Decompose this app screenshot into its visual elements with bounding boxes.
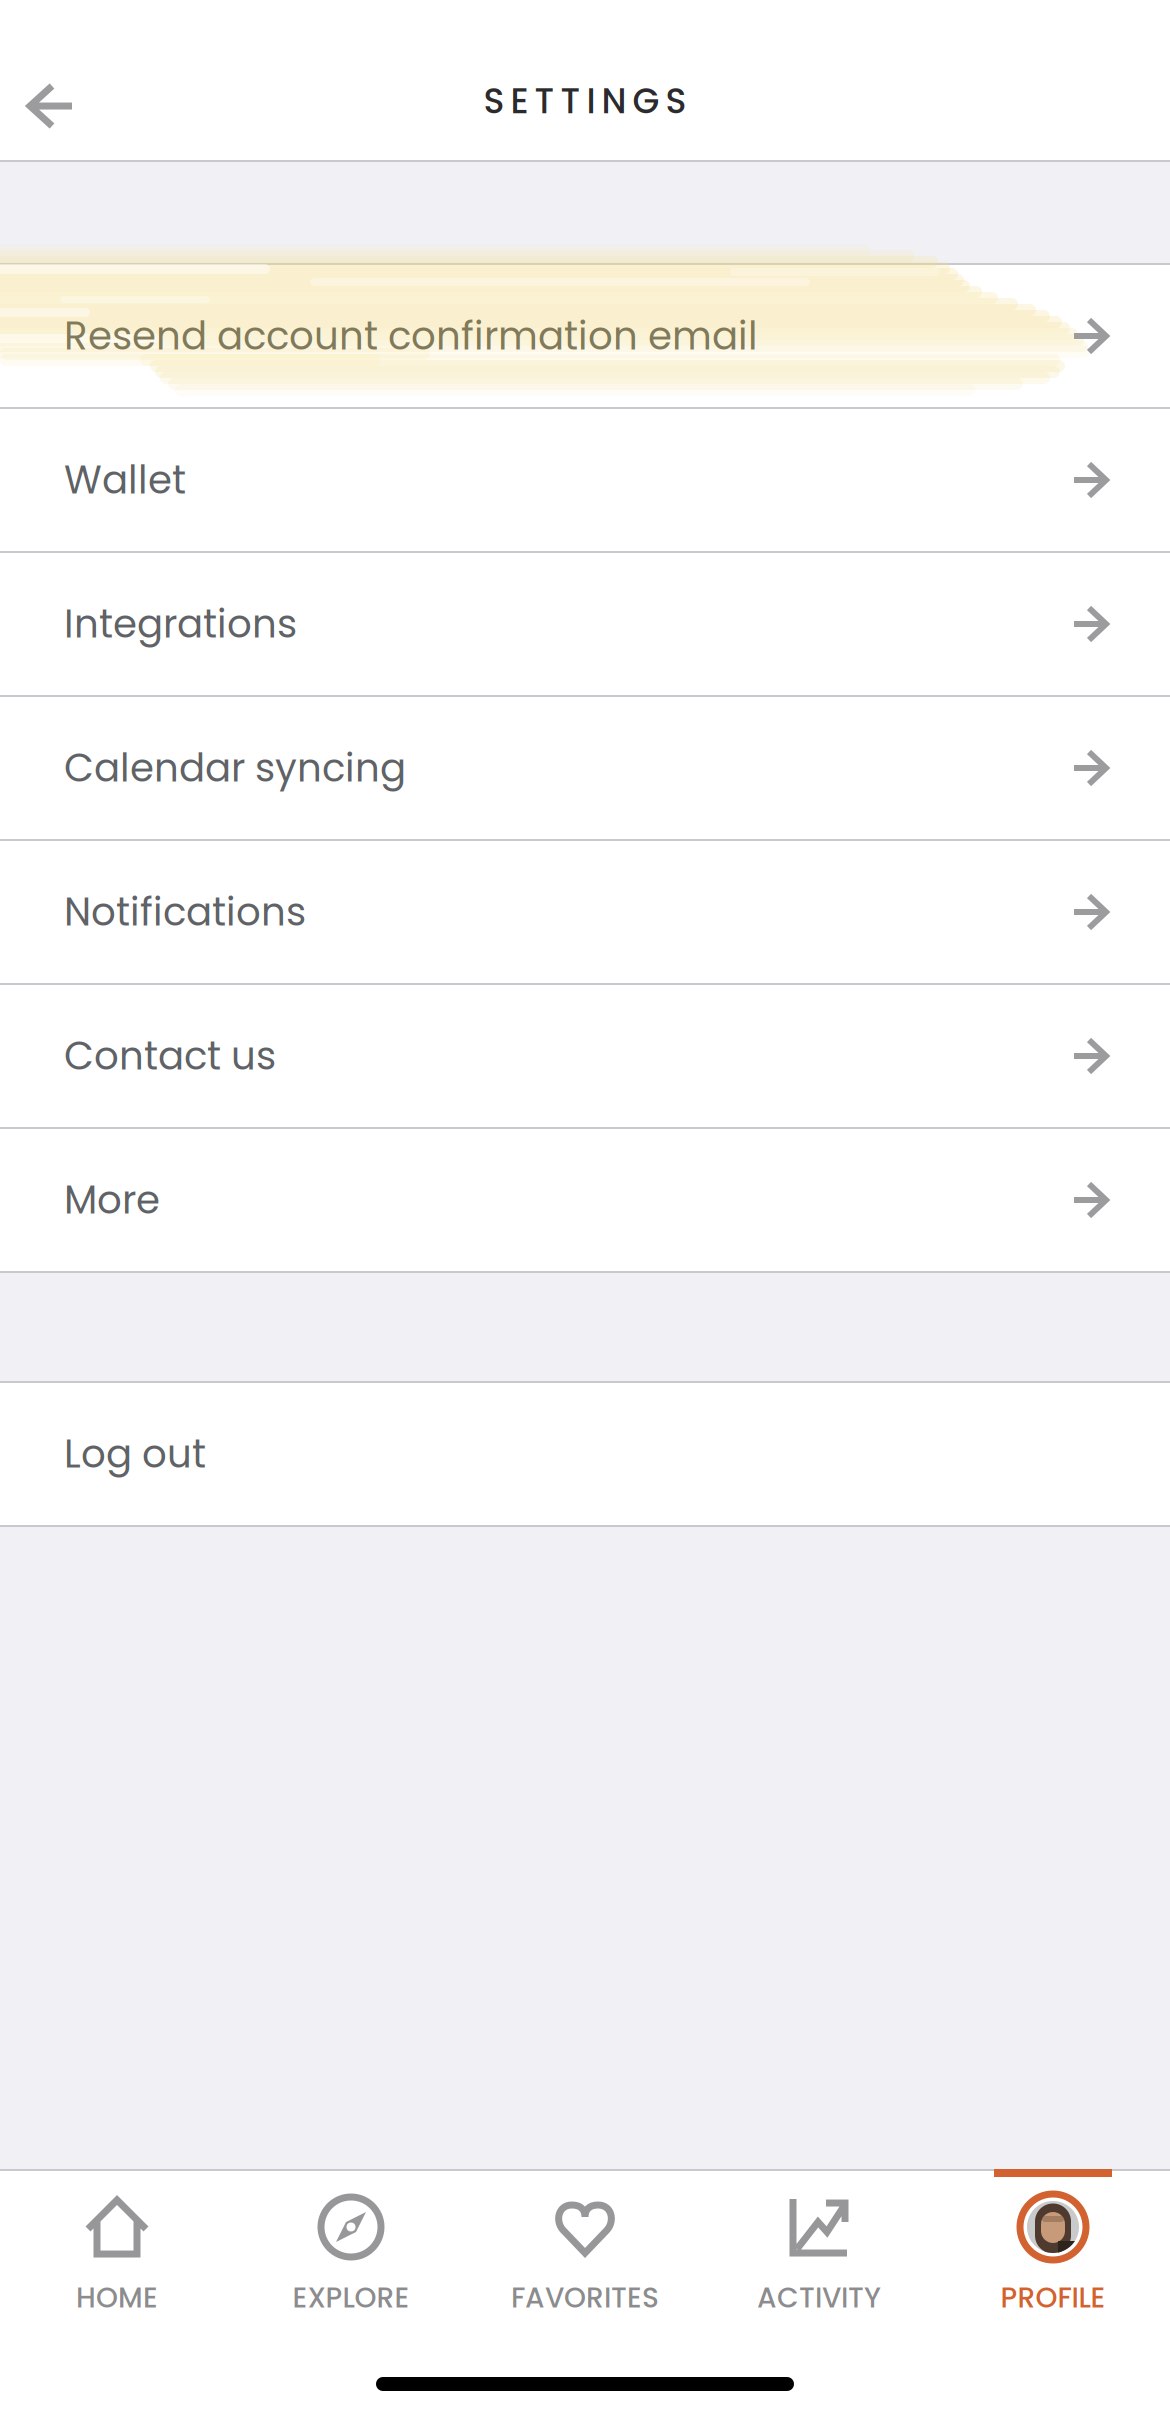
staticText: Contact us bbox=[64, 1029, 276, 1083]
button[interactable]: Notifications bbox=[0, 841, 1170, 985]
button[interactable]: Resend account confirmation email bbox=[0, 265, 1170, 409]
staticText: PROFILE bbox=[1000, 2278, 1105, 2317]
button[interactable]: EXPLORE bbox=[234, 2169, 468, 2349]
staticText: Notifications bbox=[64, 885, 306, 939]
staticText: FAVORITES bbox=[511, 2278, 659, 2317]
staticText: Integrations bbox=[64, 597, 297, 651]
staticText: Wallet bbox=[64, 453, 186, 507]
staticText: EXPLORE bbox=[292, 2278, 409, 2317]
button[interactable]: ACTIVITY bbox=[702, 2169, 936, 2349]
button[interactable]: Contact us bbox=[0, 985, 1170, 1129]
staticText: ACTIVITY bbox=[757, 2278, 881, 2317]
staticText: HOME bbox=[76, 2278, 158, 2317]
button[interactable]: Back bbox=[0, 55, 116, 147]
button[interactable]: Wallet bbox=[0, 409, 1170, 553]
staticText: More bbox=[64, 1173, 160, 1227]
staticText: Log out bbox=[64, 1427, 206, 1481]
staticText: Calendar syncing bbox=[64, 741, 406, 795]
staticText: SETTINGS bbox=[483, 77, 686, 125]
button[interactable]: PROFILE bbox=[936, 2169, 1170, 2349]
button[interactable]: FAVORITES bbox=[468, 2169, 702, 2349]
button[interactable]: Calendar syncing bbox=[0, 697, 1170, 841]
button[interactable]: Integrations bbox=[0, 553, 1170, 697]
button[interactable]: Log out bbox=[0, 1383, 1170, 1527]
staticText: Resend account confirmation email bbox=[64, 309, 758, 363]
button[interactable]: HOME bbox=[0, 2169, 234, 2349]
button[interactable]: More bbox=[0, 1129, 1170, 1273]
